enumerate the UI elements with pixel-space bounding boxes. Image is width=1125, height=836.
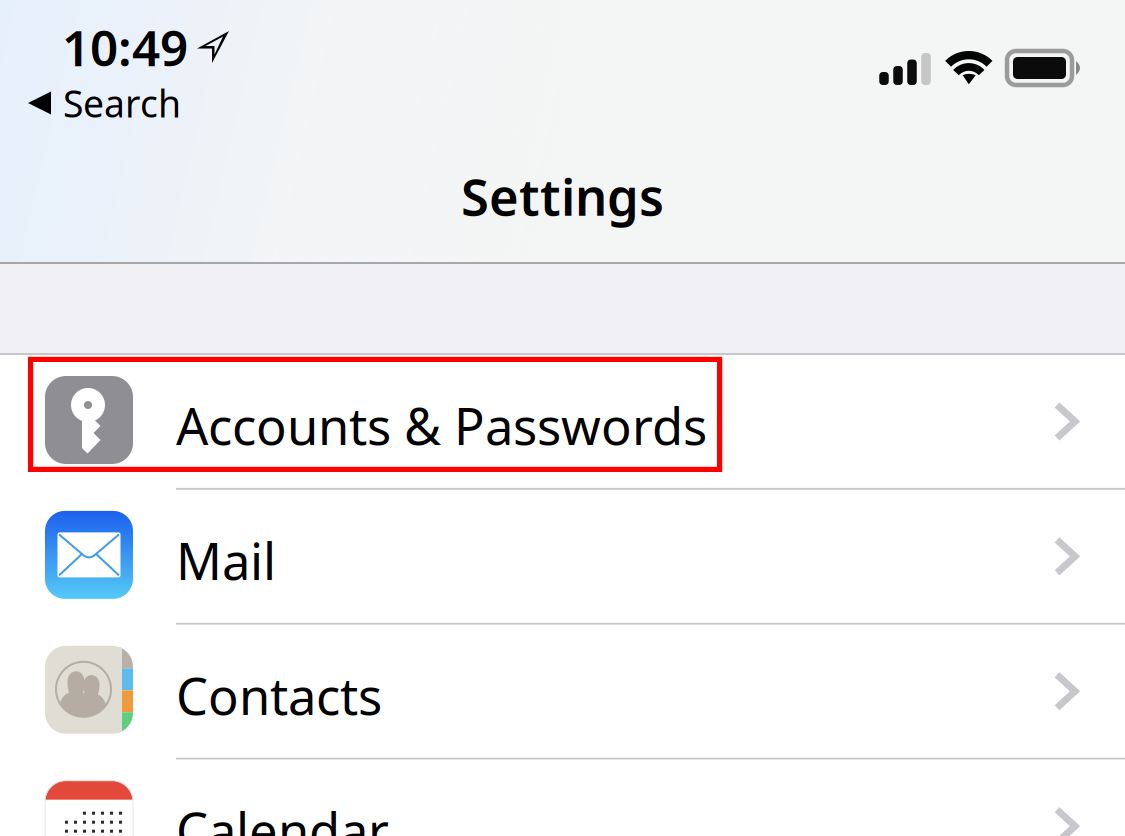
- staticText: Accounts & Passwords: [176, 392, 707, 459]
- staticText: Mail: [176, 527, 276, 594]
- button[interactable]: Accounts & Passwords: [0, 355, 1125, 490]
- staticText: Search: [63, 78, 181, 128]
- staticText: Settings: [461, 162, 664, 230]
- button[interactable]: Calendar: [0, 760, 1125, 836]
- button[interactable]: Mail: [0, 490, 1125, 625]
- staticText: Contacts: [176, 662, 382, 729]
- button[interactable]: Search: [0, 76, 205, 130]
- button[interactable]: Contacts: [0, 625, 1125, 760]
- staticText: 10:49: [62, 14, 188, 80]
- staticText: Calendar: [176, 796, 389, 836]
